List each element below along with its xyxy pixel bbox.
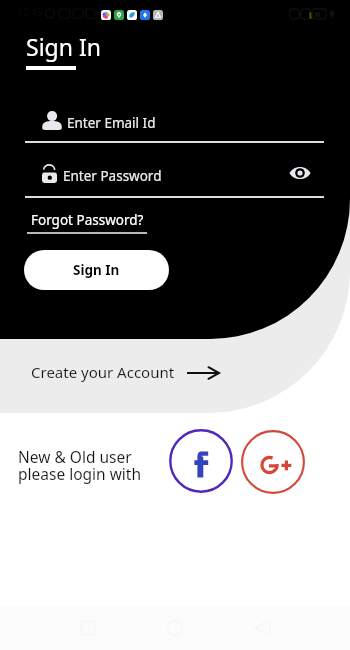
staticText: New & Old user please login with (18, 446, 142, 485)
staticText: Enter Email Id (67, 114, 156, 132)
button[interactable]: Create your Account (31, 362, 219, 382)
staticText: Create your Account (31, 362, 175, 382)
button[interactable]: Sign in with Facebook (169, 429, 233, 493)
button[interactable]: Sign in with Google (241, 430, 305, 494)
staticText: Sign In (26, 31, 101, 62)
button[interactable]: Show password (289, 166, 311, 180)
button[interactable]: Sign In (24, 250, 169, 290)
button[interactable]: Forgot Password? (26, 211, 146, 229)
staticText: Enter Password (63, 167, 162, 185)
staticText: Forgot Password? (31, 211, 144, 229)
button[interactable]: Enter Password (0, 159, 350, 201)
button[interactable]: Enter Email Id (0, 106, 350, 146)
staticText: Sign In (73, 261, 120, 279)
